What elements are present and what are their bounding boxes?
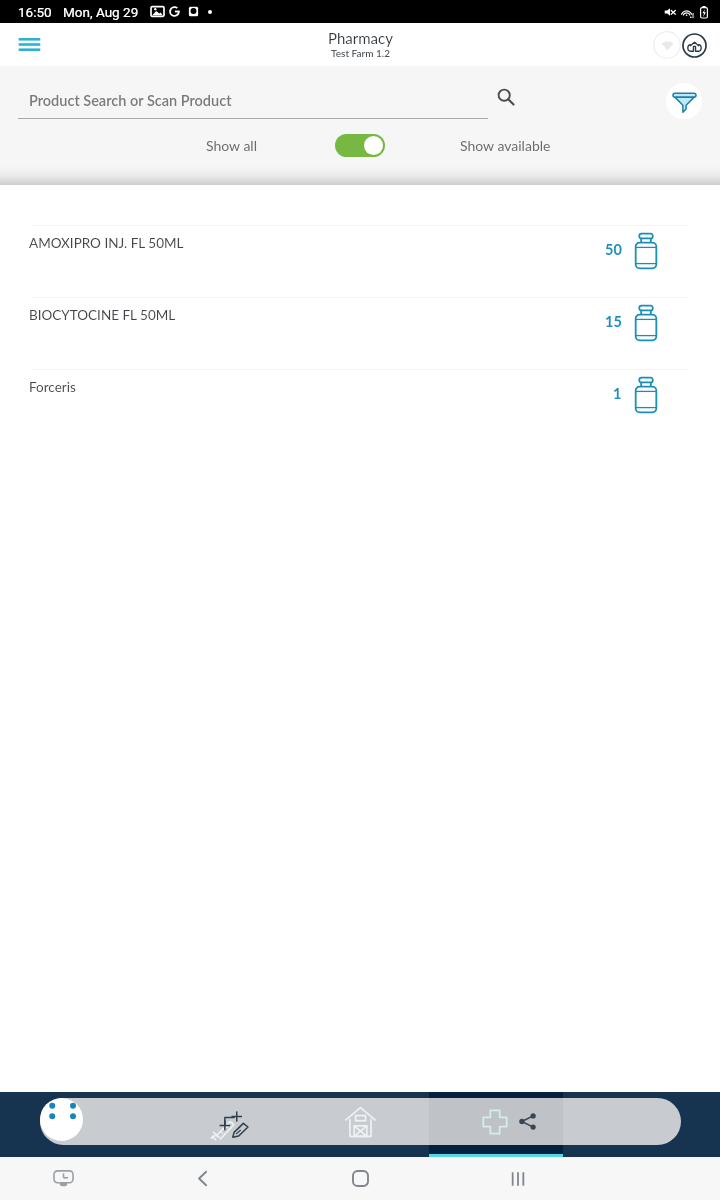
button[interactable]: Network status: [653, 31, 681, 59]
button[interactable]: Treatments: [186, 1098, 260, 1145]
button[interactable]: Search: [494, 85, 518, 109]
staticText: Pharmacy: [328, 29, 393, 47]
button[interactable]: Share: [508, 1098, 546, 1145]
staticText: Test Farm 1.2: [331, 47, 391, 59]
button[interactable]: Menu: [12, 29, 44, 61]
staticText: Forceris: [29, 379, 76, 395]
button[interactable]: Recent apps: [43, 1157, 83, 1200]
button[interactable]: Farm: [326, 1098, 394, 1145]
staticText: Show all: [206, 137, 257, 154]
staticText: BIOCYTOCINE FL 50ML: [29, 307, 176, 323]
staticText: 50: [605, 241, 622, 258]
staticText: 16:50: [18, 4, 52, 20]
button[interactable]: Back: [182, 1157, 222, 1200]
button[interactable]: Forceris: [0, 369, 720, 441]
button[interactable]: Toggle show available: [335, 134, 385, 157]
staticText: 15: [605, 313, 622, 330]
button[interactable]: Home: [340, 1157, 380, 1200]
staticText: AMOXIPRO INJ. FL 50ML: [29, 235, 184, 251]
button[interactable]: Overview: [498, 1157, 538, 1200]
button[interactable]: AMOXIPRO INJ. FL 50ML: [0, 185, 720, 297]
button[interactable]: Apps: [40, 1098, 83, 1141]
button[interactable]: BIOCYTOCINE FL 50ML: [0, 297, 720, 369]
button[interactable]: Sync: [681, 32, 708, 59]
staticText: Mon, Aug 29: [63, 4, 139, 20]
button[interactable]: Pharmacy: [466, 1098, 524, 1145]
button[interactable]: Filter: [666, 83, 702, 119]
staticText: Product Search or Scan Product: [29, 92, 232, 109]
staticText: 1: [613, 385, 622, 402]
staticText: Show available: [460, 137, 551, 154]
